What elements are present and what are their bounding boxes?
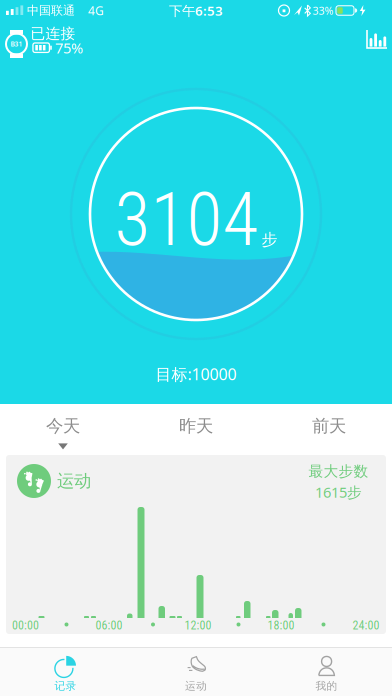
staticText: 最大步数	[308, 462, 368, 480]
staticText: 06:00	[95, 618, 122, 633]
staticText: 今天	[46, 415, 80, 437]
staticText: 昨天	[179, 415, 213, 437]
button[interactable]: 我的	[261, 648, 392, 696]
staticText: 运动	[185, 679, 207, 692]
button[interactable]	[366, 30, 388, 49]
staticText: 4G	[88, 2, 104, 18]
staticText: 1615步	[315, 482, 362, 502]
button[interactable]: 运动	[131, 648, 261, 696]
button[interactable]: 前天	[269, 404, 389, 448]
staticText: 记录	[54, 679, 76, 692]
staticText: 00:00	[12, 618, 39, 633]
staticText: 24:00	[352, 618, 379, 633]
button[interactable]: 今天	[3, 404, 123, 448]
button[interactable]: 记录	[0, 648, 131, 696]
staticText: 已连接	[30, 24, 75, 42]
button[interactable]: B31	[0, 24, 110, 64]
staticText: 前天	[312, 415, 346, 437]
staticText: 目标:10000	[155, 363, 236, 385]
staticText: 步	[261, 230, 277, 250]
staticText: 运动	[57, 470, 91, 492]
staticText: 12:00	[184, 618, 211, 633]
staticText: 33%	[312, 3, 333, 18]
staticText: B31	[10, 40, 22, 48]
staticText: 18:00	[267, 618, 294, 633]
staticText: 3104	[114, 177, 258, 263]
staticText: 75%	[55, 38, 83, 57]
staticText: 我的	[316, 679, 338, 692]
staticText: 中国联通	[27, 3, 75, 18]
staticText: 下午6:53	[169, 2, 223, 19]
button[interactable]: 昨天	[136, 404, 256, 448]
